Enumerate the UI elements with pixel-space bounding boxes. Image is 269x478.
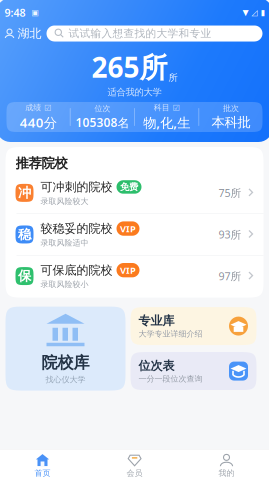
staticText: 院校库 <box>41 353 89 373</box>
staticText: VIP <box>120 264 136 276</box>
staticText: 保 <box>18 268 31 284</box>
staticText: 位次 <box>94 104 110 113</box>
button[interactable]: 位次表 <box>130 352 256 390</box>
staticText: 会员 <box>126 468 142 478</box>
staticText: 批次 <box>223 103 239 113</box>
staticText: 稳 <box>18 226 31 243</box>
staticText: 265所 <box>91 48 167 85</box>
staticText: 较稳妥的院校 <box>40 221 112 236</box>
button[interactable]: 专业库 <box>130 307 256 345</box>
staticText: 75所 <box>218 186 241 200</box>
staticText: 录取风险适中 <box>40 238 88 248</box>
staticText: 物,化,生 <box>143 114 190 131</box>
staticText: 试试输入想查找的大学和专业 <box>68 27 211 40</box>
staticText: 9:48 <box>4 5 25 20</box>
staticText: 所 <box>168 72 177 83</box>
staticText: ▣ <box>25 8 39 17</box>
button[interactable]: 湖北 <box>0 23 46 43</box>
button[interactable]: 院校库 <box>5 307 125 391</box>
staticText: 97所 <box>218 269 241 283</box>
staticText: 93所 <box>218 227 241 242</box>
staticText: 大学专业详细介绍 <box>138 329 202 339</box>
staticText: ▼ ◿ ▮ <box>242 8 264 17</box>
button[interactable]: 保 <box>5 256 263 297</box>
button[interactable]: 稳 <box>5 214 263 255</box>
staticText: 可保底的院校 <box>40 263 112 277</box>
staticText: 本科批 <box>211 114 250 131</box>
button[interactable]: 冲 <box>5 172 263 213</box>
staticText: 首页 <box>34 468 50 478</box>
button[interactable]: 会员 <box>88 453 180 477</box>
staticText: 可冲刺的院校 <box>40 180 112 194</box>
staticText: 找心仪大学 <box>45 375 85 384</box>
staticText: 湖北 <box>17 26 41 41</box>
staticText: VIP <box>120 222 136 235</box>
staticText: 免费 <box>120 181 138 193</box>
staticText: 录取风险较小 <box>40 279 88 289</box>
staticText: 冲 <box>18 185 31 201</box>
button[interactable]: 首页 <box>0 453 88 477</box>
button[interactable]: 试试输入想查找的大学和专业 <box>46 25 262 41</box>
staticText: 科目 ☑ <box>154 103 180 112</box>
staticText: 适合我的大学 <box>107 86 161 98</box>
staticText: 一分一段位次查询 <box>138 374 202 384</box>
staticText: 成绩 ☑ <box>25 103 51 112</box>
staticText: 专业库 <box>138 313 174 328</box>
staticText: 105308名 <box>75 114 129 130</box>
staticText: 440分 <box>20 114 57 131</box>
staticText: 录取风险较大 <box>40 196 88 206</box>
staticText: 推荐院校 <box>15 155 67 171</box>
staticText: 我的 <box>218 468 234 478</box>
button[interactable]: 我的 <box>180 453 269 477</box>
staticText: 位次表 <box>138 358 174 373</box>
